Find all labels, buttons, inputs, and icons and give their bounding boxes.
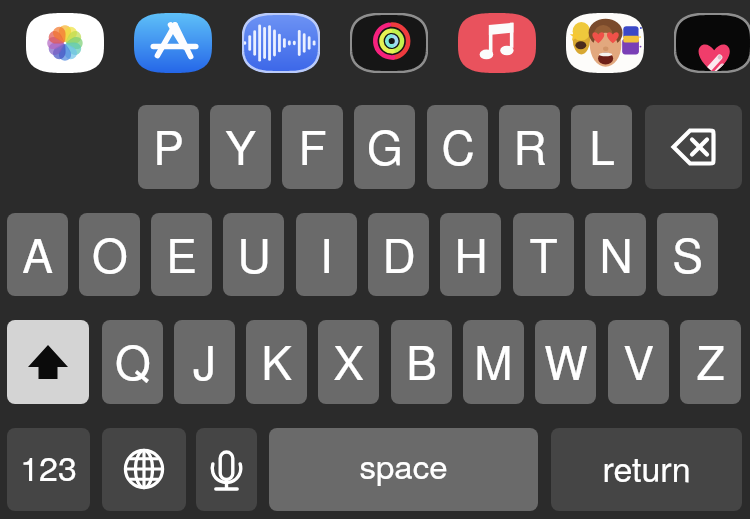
button[interactable]: W: [535, 320, 596, 404]
button[interactable]: Shift: [7, 320, 89, 404]
button[interactable]: G: [354, 105, 415, 189]
staticText: return: [602, 443, 691, 492]
button[interactable]: I: [296, 213, 357, 296]
staticText: H: [454, 220, 488, 286]
button[interactable]: C: [427, 105, 488, 189]
button[interactable]: 123: [7, 428, 90, 511]
button[interactable]: N: [585, 213, 646, 296]
staticText: B: [406, 327, 437, 393]
button[interactable]: L: [571, 105, 632, 189]
staticText: R: [513, 112, 547, 178]
button[interactable]: K: [246, 320, 307, 404]
button[interactable]: S: [657, 213, 718, 296]
staticText: O: [92, 220, 128, 286]
button[interactable]: space: [269, 428, 538, 511]
button[interactable]: R: [499, 105, 560, 189]
staticText: K: [261, 327, 292, 393]
staticText: Q: [115, 327, 151, 393]
button[interactable]: H: [440, 213, 501, 296]
button[interactable]: P: [138, 105, 199, 189]
staticText: N: [599, 220, 633, 286]
staticText: Z: [696, 327, 725, 393]
button[interactable]: Backspace: [645, 105, 742, 189]
staticText: E: [166, 220, 197, 286]
staticText: W: [544, 327, 588, 393]
staticText: D: [382, 220, 416, 286]
staticText: M: [474, 327, 513, 393]
staticText: L: [589, 112, 615, 178]
button[interactable]: Z: [680, 320, 741, 404]
button[interactable]: A: [7, 213, 68, 296]
button[interactable]: O: [79, 213, 140, 296]
button[interactable]: D: [368, 213, 429, 296]
staticText: 123: [20, 442, 77, 491]
button[interactable]: U: [223, 213, 284, 296]
button[interactable]: return: [551, 428, 742, 511]
button[interactable]: X: [318, 320, 379, 404]
staticText: F: [298, 112, 327, 178]
button[interactable]: Switch keyboard: [102, 428, 186, 511]
button[interactable]: F: [282, 105, 343, 189]
button[interactable]: M: [463, 320, 524, 404]
staticText: A: [22, 220, 53, 286]
staticText: G: [367, 112, 403, 178]
button[interactable]: B: [391, 320, 452, 404]
button[interactable]: Y: [210, 105, 271, 189]
button[interactable]: Music: [458, 13, 536, 73]
button[interactable]: Memoji: [566, 13, 644, 73]
staticText: I: [320, 220, 333, 286]
button[interactable]: App Store: [134, 13, 212, 73]
staticText: P: [153, 112, 184, 178]
staticText: S: [672, 220, 703, 286]
button[interactable]: Voice Memos: [242, 13, 320, 73]
staticText: J: [193, 327, 216, 393]
button[interactable]: Digital Touch: [674, 13, 750, 73]
staticText: X: [333, 327, 364, 393]
button[interactable]: T: [513, 213, 574, 296]
button[interactable]: Dictation: [196, 428, 257, 511]
button[interactable]: Q: [102, 320, 163, 404]
staticText: U: [237, 220, 271, 286]
staticText: C: [441, 112, 475, 178]
button[interactable]: V: [608, 320, 669, 404]
button[interactable]: Fitness: [350, 13, 428, 73]
button[interactable]: Photos: [26, 13, 104, 73]
staticText: V: [623, 327, 654, 393]
button[interactable]: E: [151, 213, 212, 296]
staticText: Y: [225, 112, 256, 178]
staticText: T: [529, 220, 558, 286]
staticText: space: [359, 441, 448, 488]
button[interactable]: J: [174, 320, 235, 404]
